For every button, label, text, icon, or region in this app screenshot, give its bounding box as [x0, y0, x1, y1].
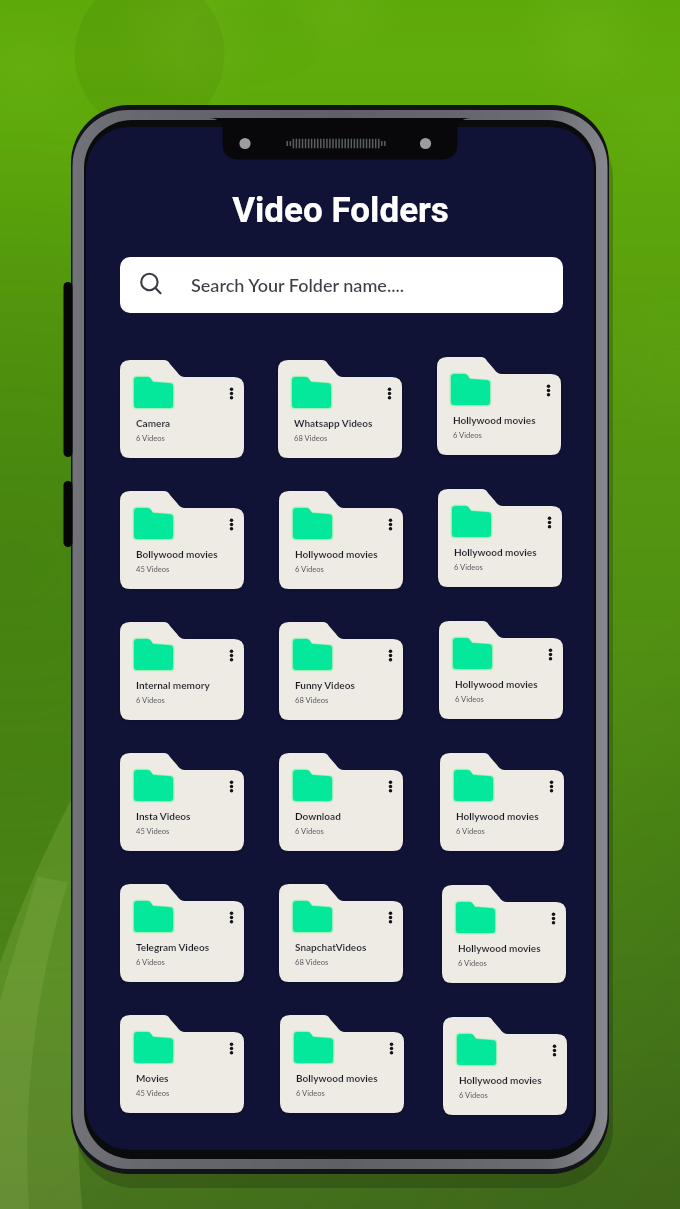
button[interactable]: More options [223, 909, 240, 926]
button[interactable]: More options [382, 909, 399, 926]
staticText: Funny Videos [295, 679, 355, 691]
button[interactable]: More options [437, 357, 561, 455]
staticText: Hollywood movies [454, 546, 537, 558]
button[interactable]: More options [120, 360, 244, 458]
button[interactable]: More options [223, 778, 240, 795]
staticText: 6 Videos [453, 430, 482, 439]
button[interactable]: More options [542, 646, 559, 663]
staticText: 6 Videos [136, 433, 165, 442]
button[interactable]: Search Your Folder name.... [120, 257, 563, 313]
button[interactable]: More options [545, 910, 562, 927]
button[interactable]: More options [223, 647, 240, 664]
button[interactable]: More options [440, 753, 564, 851]
staticText: Hollywood movies [455, 678, 538, 690]
staticText: Bollywood movies [296, 1072, 378, 1084]
button[interactable]: More options [541, 514, 558, 531]
button[interactable]: More options [382, 647, 399, 664]
staticText: Download [295, 810, 341, 822]
staticText: Internal memory [136, 679, 210, 691]
staticText: 6 Videos [459, 1090, 488, 1099]
staticText: SnapchatVideos [295, 941, 367, 953]
button[interactable]: More options [280, 1015, 404, 1113]
staticText: 6 Videos [458, 958, 487, 967]
staticText: 6 Videos [136, 957, 165, 966]
button[interactable]: More options [381, 385, 398, 402]
button[interactable]: More options [543, 778, 560, 795]
button[interactable]: More options [442, 885, 566, 983]
button[interactable]: More options [443, 1017, 567, 1115]
button[interactable]: More options [120, 1015, 244, 1113]
staticText: Hollywood movies [295, 548, 378, 560]
button[interactable]: More options [223, 516, 240, 533]
staticText: Hollywood movies [453, 414, 536, 426]
staticText: 45 Videos [136, 564, 170, 573]
staticText: 6 Videos [295, 826, 324, 835]
button[interactable]: More options [120, 491, 244, 589]
staticText: 6 Videos [454, 562, 483, 571]
staticText: Camera [136, 417, 171, 429]
staticText: 6 Videos [456, 826, 485, 835]
staticText: Hollywood movies [458, 942, 541, 954]
button[interactable]: More options [223, 385, 240, 402]
staticText: 6 Videos [136, 695, 165, 704]
staticText: Hollywood movies [456, 810, 539, 822]
button[interactable]: More options [382, 778, 399, 795]
staticText: 68 Videos [295, 957, 329, 966]
staticText: 6 Videos [296, 1088, 325, 1097]
staticText: Telegram Videos [136, 941, 210, 953]
staticText: 6 Videos [295, 564, 324, 573]
button[interactable]: More options [223, 1040, 240, 1057]
button[interactable]: More options [279, 884, 403, 982]
staticText: 45 Videos [136, 1088, 170, 1097]
button[interactable]: More options [279, 491, 403, 589]
staticText: Insta Videos [136, 810, 191, 822]
button[interactable]: More options [540, 382, 557, 399]
button[interactable]: More options [546, 1042, 563, 1059]
staticText: Movies [136, 1072, 169, 1084]
staticText: Hollywood movies [459, 1074, 542, 1086]
staticText: 68 Videos [295, 695, 329, 704]
button[interactable]: More options [120, 622, 244, 720]
staticText: Whatsapp Videos [294, 417, 373, 429]
staticText: 68 Videos [294, 433, 328, 442]
button[interactable]: More options [438, 489, 562, 587]
staticText: 6 Videos [455, 694, 484, 703]
button[interactable]: More options [382, 516, 399, 533]
staticText: 45 Videos [136, 826, 170, 835]
button[interactable]: More options [120, 884, 244, 982]
button[interactable]: More options [120, 753, 244, 851]
button[interactable]: More options [279, 753, 403, 851]
staticText: Video Folders [85, 190, 596, 231]
button[interactable]: More options [278, 360, 402, 458]
staticText: Bollywood movies [136, 548, 218, 560]
button[interactable]: More options [383, 1040, 400, 1057]
staticText: Search Your Folder name.... [191, 274, 404, 296]
button[interactable]: More options [439, 621, 563, 719]
button[interactable]: More options [279, 622, 403, 720]
